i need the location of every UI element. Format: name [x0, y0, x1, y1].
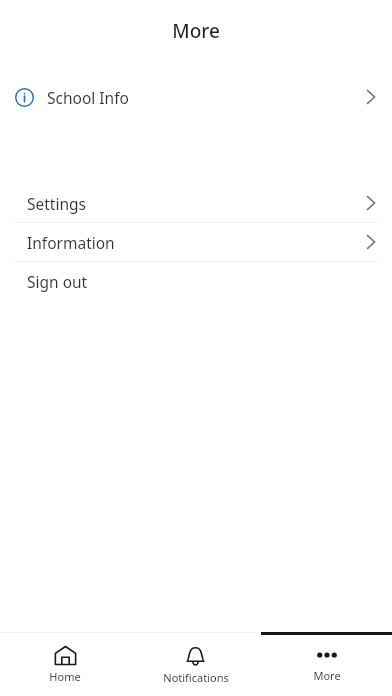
staticText: Settings: [27, 193, 86, 214]
button[interactable]: More: [261, 632, 392, 696]
staticText: More: [172, 18, 220, 44]
staticText: More: [313, 668, 341, 683]
staticText: Home: [49, 669, 81, 684]
button[interactable]: School Info: [0, 78, 392, 116]
button[interactable]: Sign out: [0, 262, 392, 300]
button[interactable]: Home: [0, 632, 130, 696]
button[interactable]: Settings: [0, 184, 392, 222]
other: More: [316, 645, 338, 665]
button[interactable]: Information: [0, 223, 392, 261]
staticText: Sign out: [27, 271, 88, 292]
button[interactable]: Notifications: [130, 632, 261, 696]
staticText: Notifications: [163, 670, 229, 685]
staticText: School Info: [47, 87, 129, 108]
staticText: Information: [27, 232, 115, 253]
